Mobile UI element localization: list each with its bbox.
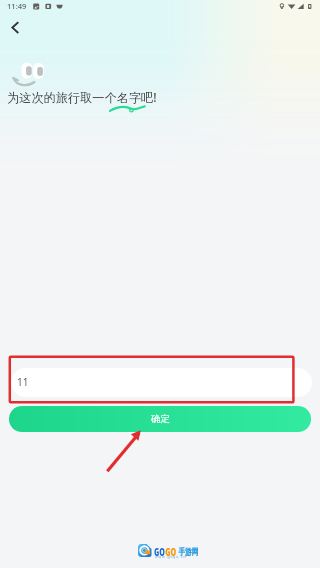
button[interactable]: 确定 (9, 406, 311, 432)
button[interactable]: Back (2, 16, 26, 40)
button[interactable]: 11 (11, 368, 312, 397)
staticText: 11 (17, 375, 29, 389)
staticText: 11:49 (7, 1, 27, 11)
staticText: 为这次的旅行取一个名字吧! (7, 89, 157, 106)
staticText: GO (165, 545, 176, 559)
staticText: GO (154, 545, 165, 559)
staticText: 手游网 (178, 546, 199, 558)
staticText: w w w . g o g o . c n (155, 554, 186, 559)
staticText: 确定 (151, 413, 170, 425)
